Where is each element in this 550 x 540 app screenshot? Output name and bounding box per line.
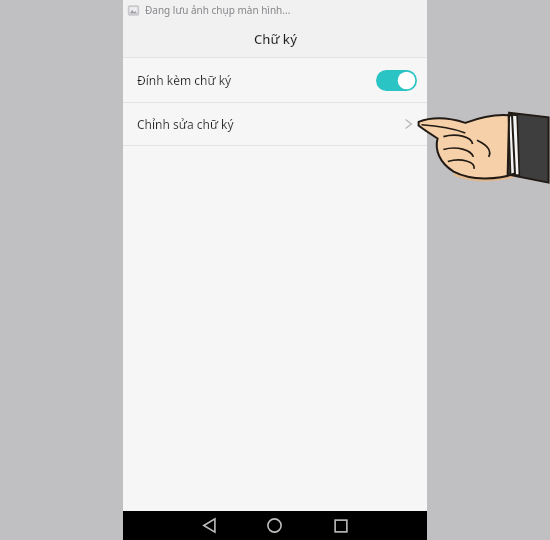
staticText: Chữ ký (254, 30, 297, 48)
staticText: Đính kèm chữ ký (137, 72, 232, 88)
staticText: Chỉnh sửa chữ ký (137, 116, 234, 132)
button[interactable]: Đính kèm chữ ký (123, 58, 427, 102)
staticText: Đang lưu ảnh chụp màn hình... (145, 3, 291, 17)
button[interactable]: Home (257, 511, 291, 540)
button[interactable]: Attach signature (376, 70, 417, 91)
button[interactable]: Back (192, 511, 226, 540)
button[interactable]: Recent apps (324, 511, 358, 540)
button[interactable]: Chỉnh sửa chữ ký (123, 103, 427, 145)
